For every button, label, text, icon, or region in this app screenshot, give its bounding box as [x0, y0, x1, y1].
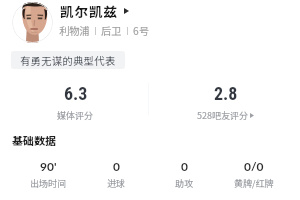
staticText: 后卫: [101, 23, 122, 38]
staticText: 进球: [107, 177, 126, 190]
button[interactable]: 6.3: [15, 83, 135, 123]
button[interactable]: 0: [82, 159, 150, 190]
staticText: 2.8: [214, 83, 238, 104]
staticText: 528吧友评分: [197, 109, 248, 122]
staticText: 0: [181, 159, 188, 173]
staticText: 基础数据: [12, 132, 56, 148]
staticText: 有勇无谋的典型代表: [20, 53, 116, 68]
button[interactable]: Player avatar: [12, 2, 53, 43]
staticText: 0: [113, 159, 120, 173]
staticText: 利物浦: [59, 23, 90, 38]
other: Player avatar: [12, 2, 53, 43]
staticText: 媒体评分: [57, 109, 94, 122]
staticText: 90': [40, 159, 57, 173]
button[interactable]: 凯尔凯兹: [60, 1, 129, 21]
staticText: 6.3: [64, 83, 88, 104]
staticText: 黄牌/红牌: [234, 177, 274, 190]
staticText: 0/0: [244, 159, 264, 173]
staticText: 出场时间: [30, 177, 67, 190]
button[interactable]: 2.8: [165, 83, 285, 123]
staticText: 凯尔凯兹: [60, 1, 118, 21]
button[interactable]: 90': [14, 159, 82, 190]
button[interactable]: 0: [150, 159, 219, 190]
button[interactable]: 0/0: [219, 159, 288, 190]
staticText: 6号: [133, 23, 149, 38]
staticText: 助攻: [175, 177, 194, 190]
button[interactable]: 有勇无谋的典型代表: [11, 51, 125, 69]
